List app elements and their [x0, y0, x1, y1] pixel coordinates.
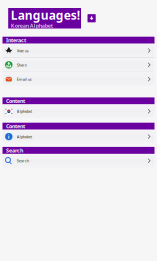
staticText: Email us [17, 76, 32, 82]
staticText: Languages! [11, 7, 80, 23]
staticText: Korean Alphabet [11, 22, 53, 29]
staticText: Content [6, 123, 25, 130]
button[interactable]: Alphabet [2, 130, 154, 143]
button[interactable]: Vote us [2, 44, 154, 57]
staticText: Search [6, 147, 23, 154]
staticText: Content [6, 97, 25, 104]
button[interactable]: Get the app [87, 14, 96, 22]
button[interactable]: Share [2, 58, 154, 72]
staticText: Vote us [17, 48, 29, 53]
staticText: Share [17, 62, 27, 67]
staticText: Alphabet [17, 109, 32, 114]
staticText: Interact [6, 37, 26, 44]
button[interactable]: Search [2, 154, 154, 168]
staticText: Search [17, 158, 29, 163]
button[interactable]: Alphabet [2, 104, 154, 118]
staticText: Alphabet [17, 134, 32, 139]
button[interactable]: Email us [2, 72, 154, 86]
